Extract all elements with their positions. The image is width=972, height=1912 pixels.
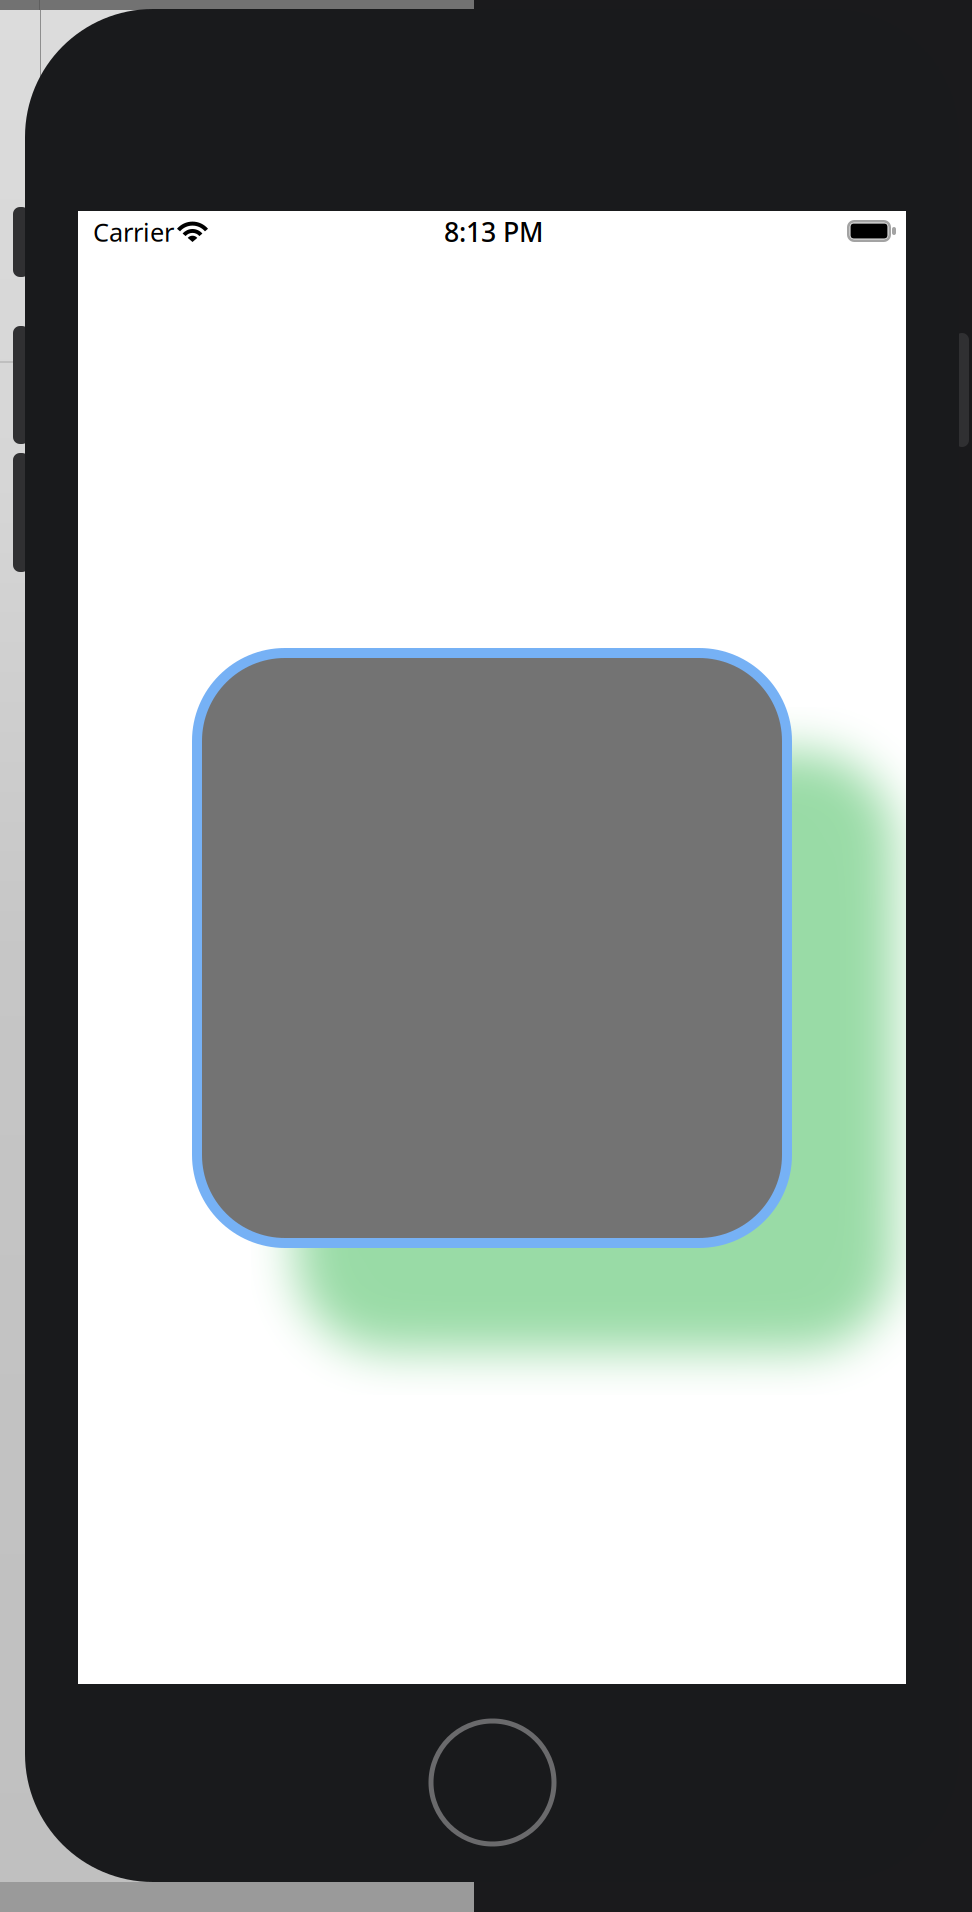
button[interactable]: Card xyxy=(192,648,792,1248)
staticText: Carrier xyxy=(93,215,174,249)
staticText: 8:13 PM xyxy=(444,214,543,249)
